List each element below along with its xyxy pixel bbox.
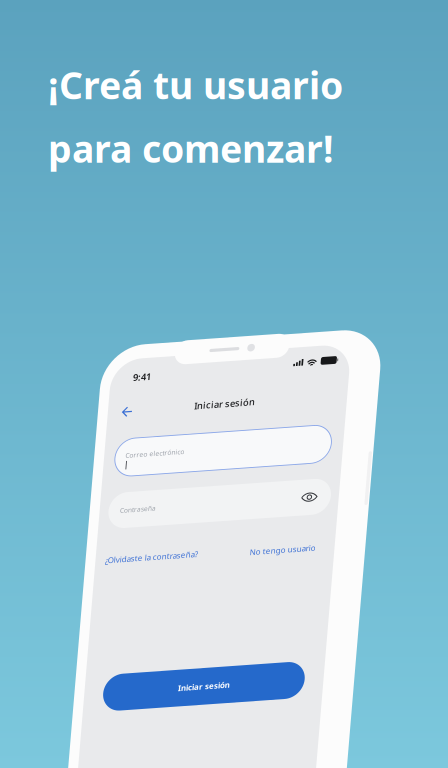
button[interactable]: Iniciar sesión (29, 331, 231, 368)
staticText: para comenzar! (48, 124, 334, 173)
staticText: ¡Creá tu usuario (48, 60, 343, 110)
button[interactable]: Show password (212, 160, 229, 172)
staticText: Iniciar sesión (104, 344, 156, 355)
staticText: Iniciar sesión (96, 59, 157, 72)
staticText: Contraseña (30, 162, 66, 170)
